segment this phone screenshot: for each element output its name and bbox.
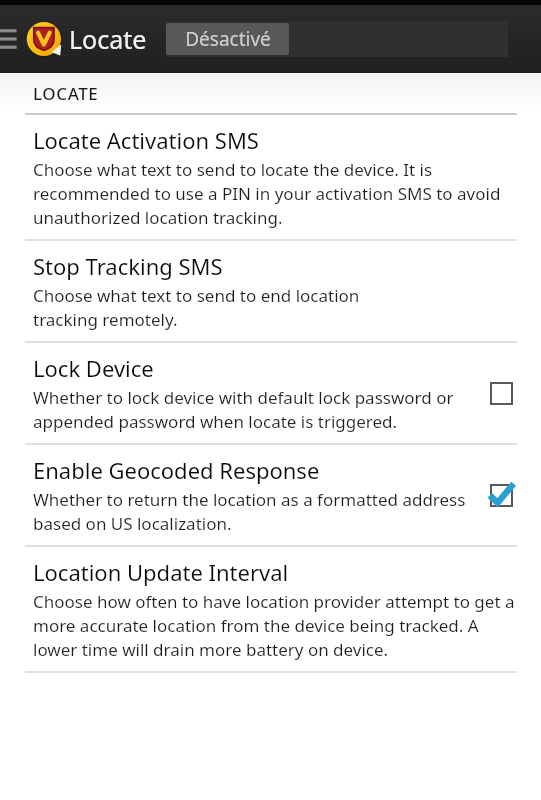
button[interactable]: Enable Geocoded Response bbox=[0, 445, 541, 545]
staticText: Choose what text to send to end location… bbox=[33, 284, 421, 331]
staticText: LOCATE bbox=[33, 82, 99, 105]
staticText: Choose how often to have location provid… bbox=[33, 590, 519, 661]
button[interactable]: Location Update Interval bbox=[0, 547, 541, 671]
staticText: Location Update Interval bbox=[33, 557, 289, 587]
staticText: Locate Activation SMS bbox=[33, 125, 259, 155]
staticText: Locate bbox=[69, 22, 147, 56]
button[interactable]: Locate Activation SMS bbox=[0, 115, 541, 239]
staticText: Stop Tracking SMS bbox=[33, 251, 223, 281]
button[interactable]: Désactivé bbox=[166, 23, 289, 55]
staticText: Choose what text to send to locate the d… bbox=[33, 158, 519, 229]
staticText: Lock Device bbox=[33, 353, 154, 383]
staticText: Whether to lock device with default lock… bbox=[33, 386, 467, 433]
button[interactable]: Open navigation menu bbox=[0, 14, 26, 64]
button[interactable]: Stop Tracking SMS bbox=[0, 241, 541, 341]
staticText: Whether to return the location as a form… bbox=[33, 488, 467, 535]
staticText: Désactivé bbox=[185, 26, 271, 52]
button[interactable]: Lock Device bbox=[0, 343, 541, 443]
staticText: Enable Geocoded Response bbox=[33, 455, 320, 485]
